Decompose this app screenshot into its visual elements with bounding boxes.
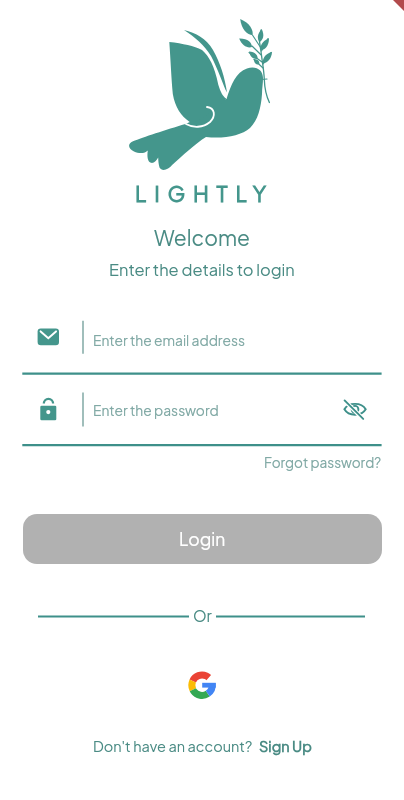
button[interactable]: Login <box>23 514 382 564</box>
staticText: Sign Up <box>259 737 312 755</box>
staticText: Forgot password? <box>264 454 382 471</box>
staticText: Enter the details to login <box>109 259 295 280</box>
button[interactable]: Sign in with Google <box>184 667 220 703</box>
staticText: Enter the email address <box>93 332 246 349</box>
staticText: Don't have an account? <box>93 737 253 755</box>
staticText: Enter the password <box>93 402 219 419</box>
staticText: Login <box>179 528 226 550</box>
button[interactable]: Show password <box>340 396 370 426</box>
staticText: Or <box>193 606 212 626</box>
button[interactable]: Sign Up <box>259 737 312 755</box>
staticText: LIGHTLY <box>135 180 274 207</box>
button[interactable]: Forgot password? <box>264 454 382 471</box>
staticText: Welcome <box>154 224 250 250</box>
